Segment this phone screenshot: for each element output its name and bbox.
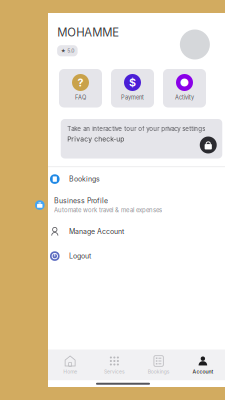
button[interactable]: Take an interactive tour of your privacy…	[61, 119, 222, 158]
staticText: Bookings	[69, 175, 100, 183]
staticText: Payment	[121, 94, 144, 101]
staticText: MOHAMME	[57, 25, 119, 39]
button[interactable]: ?	[59, 69, 102, 107]
button[interactable]: Bookings	[38, 167, 225, 191]
staticText: Automate work travel & meal expenses	[54, 206, 162, 214]
staticText: Logout	[69, 252, 91, 260]
button[interactable]: Bookings	[136, 349, 181, 380]
staticText: Bookings	[148, 368, 170, 375]
button[interactable]: $	[111, 69, 154, 107]
staticText: Account	[192, 368, 213, 375]
staticText: Activity	[175, 94, 194, 101]
staticText: Home	[63, 368, 77, 375]
button[interactable]: Services	[92, 349, 136, 380]
button[interactable]: Account	[181, 349, 225, 380]
staticText: Business Profile	[54, 196, 108, 205]
staticText: ●	[179, 76, 189, 89]
button[interactable]: Logout	[38, 244, 225, 268]
staticText: ?	[77, 76, 83, 89]
button[interactable]: Business Profile	[28, 191, 225, 219]
staticText: Manage Account	[69, 227, 124, 236]
staticText: $	[129, 76, 136, 89]
staticText: ★	[61, 48, 66, 54]
staticText: FAQ	[75, 94, 86, 101]
button[interactable]: Home	[48, 349, 92, 380]
staticText: Services	[104, 368, 125, 375]
button[interactable]: Manage Account	[38, 219, 225, 244]
staticText: Privacy check-up	[67, 135, 124, 143]
staticText: 5.0	[67, 48, 74, 54]
button[interactable]: ●	[163, 69, 206, 107]
staticText: Take an interactive tour of your privacy…	[67, 125, 205, 132]
